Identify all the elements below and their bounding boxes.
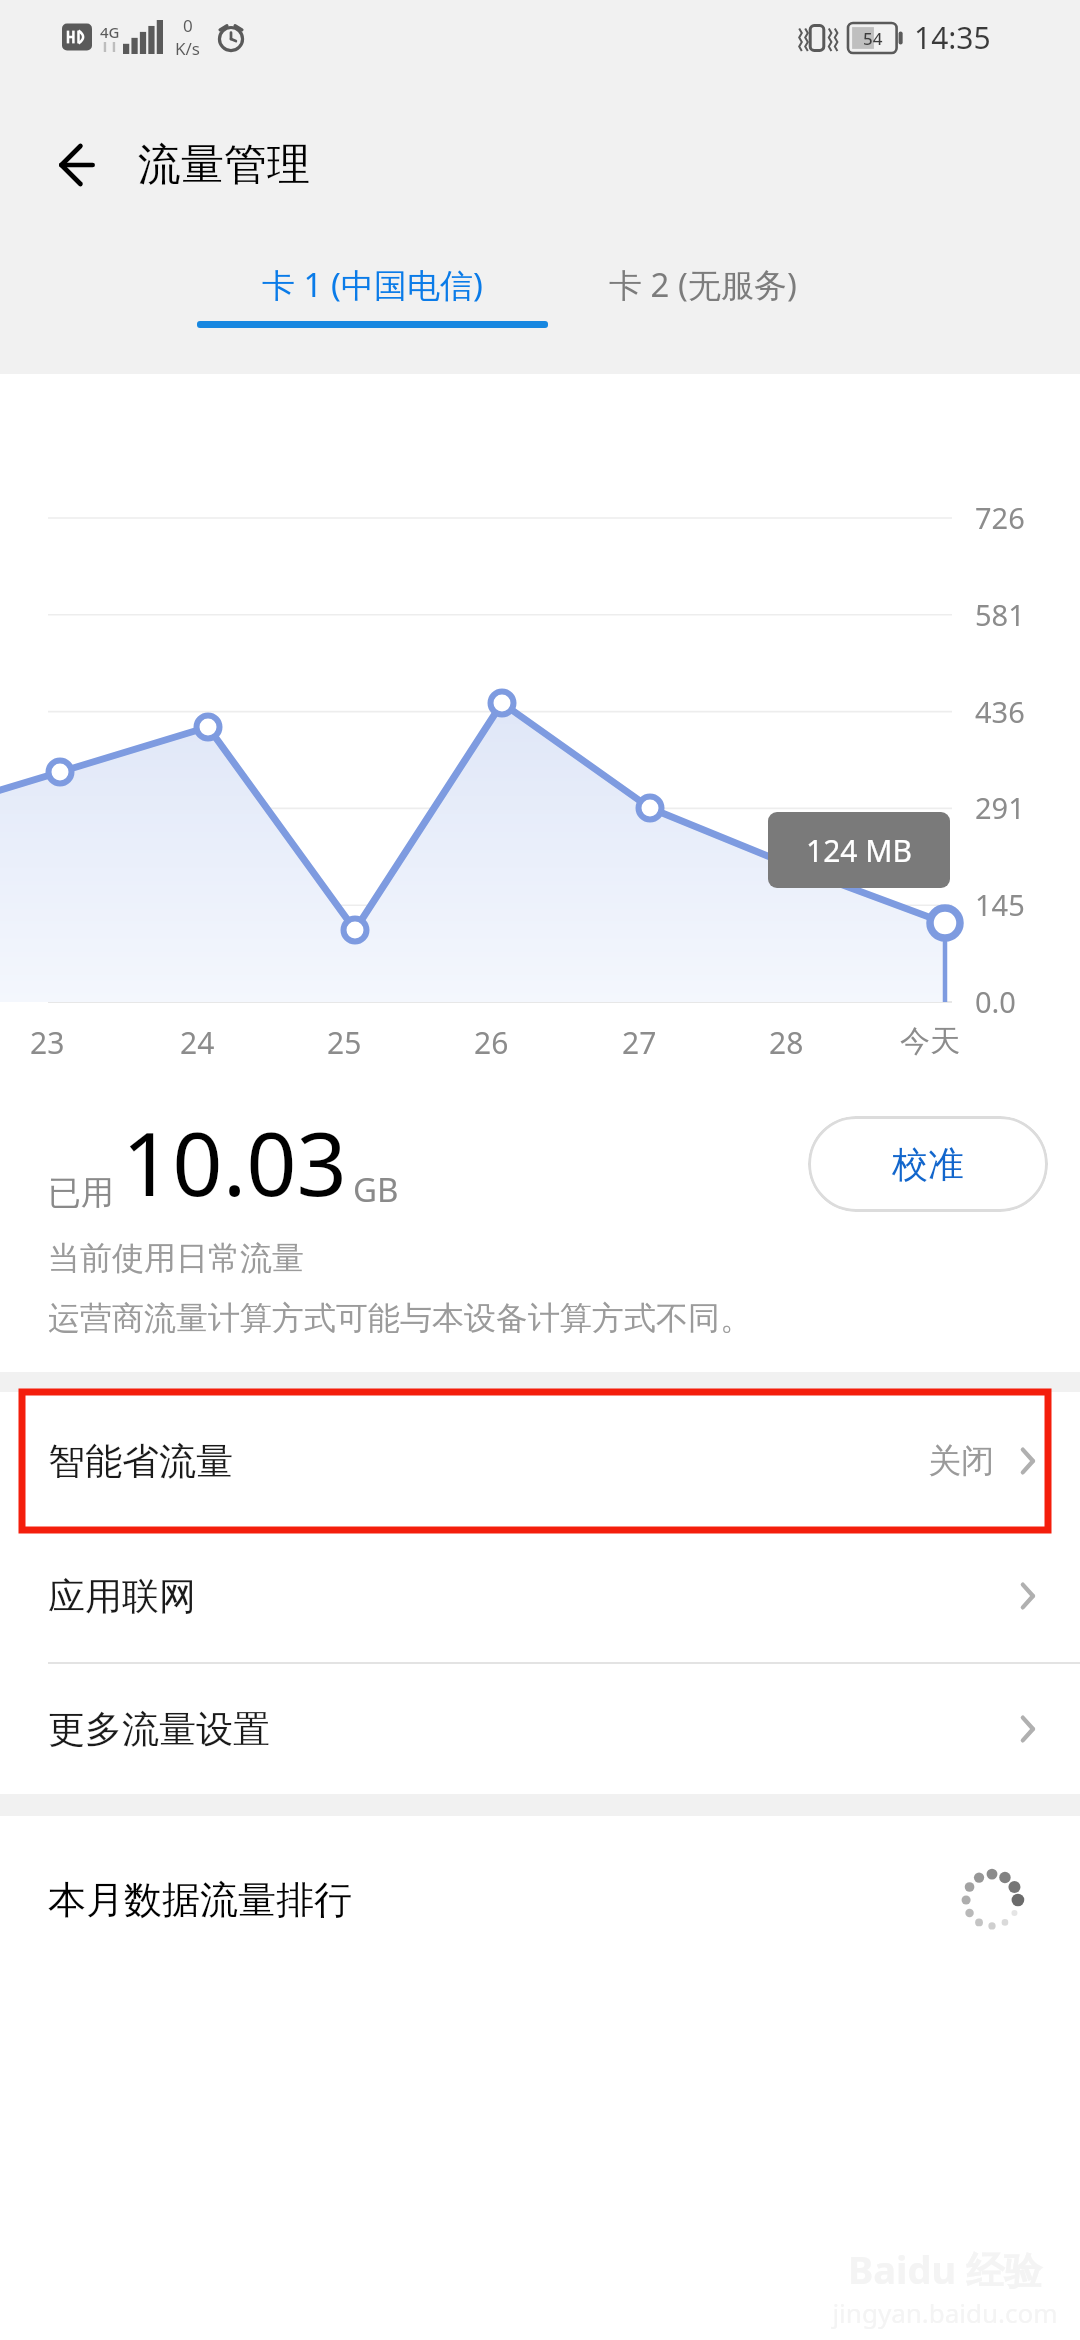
staticText: K/s <box>175 37 200 60</box>
staticText: 智能省流量 <box>48 1438 233 1485</box>
staticText: 28 <box>769 1022 804 1063</box>
other: 加载中 <box>956 1864 1028 1936</box>
staticText: 436 <box>975 692 1025 731</box>
button[interactable]: 卡 2 (无服务) <box>597 262 809 307</box>
staticText: 流量管理 <box>138 138 310 192</box>
button[interactable]: 校准 <box>808 1116 1048 1212</box>
staticText: 10.03 <box>122 1102 347 1222</box>
staticText: 运营商流量计算方式可能与本设备计算方式不同。 <box>48 1298 752 1338</box>
button[interactable]: 返回 <box>38 127 114 203</box>
staticText: 关闭 <box>928 1440 994 1482</box>
staticText: 25 <box>327 1022 362 1063</box>
staticText: 145 <box>975 885 1025 924</box>
button[interactable]: 应用联网 <box>0 1530 1080 1662</box>
staticText: 卡 1 (中国电信) <box>262 262 483 307</box>
staticText: 0 <box>183 14 193 37</box>
staticText: 24 <box>180 1022 215 1063</box>
staticText: 4G <box>100 22 120 42</box>
staticText: 581 <box>975 595 1025 634</box>
staticText: 卡 2 (无服务) <box>609 262 797 307</box>
staticText: 726 <box>975 498 1025 537</box>
staticText: 27 <box>622 1022 657 1063</box>
staticText: 0.0 <box>975 982 1016 1021</box>
staticText: 26 <box>474 1022 509 1063</box>
staticText: 54 <box>863 27 883 50</box>
button[interactable]: 智能省流量 <box>0 1392 1080 1530</box>
button[interactable]: 本月数据流量排行 <box>0 1816 1080 1984</box>
button[interactable]: 卡 1 (中国电信) <box>185 262 560 328</box>
staticText: 今天 <box>900 1022 960 1060</box>
button[interactable]: 更多流量设置 <box>0 1664 1080 1794</box>
staticText: 本月数据流量排行 <box>48 1876 352 1924</box>
staticText: 124 MB <box>806 830 912 871</box>
staticText: 校准 <box>892 1142 964 1187</box>
staticText: 23 <box>30 1022 65 1063</box>
staticText: 已用 <box>48 1172 114 1214</box>
staticText: jingyan.baidu.com <box>832 2295 1058 2330</box>
staticText: 当前使用日常流量 <box>48 1238 304 1278</box>
staticText: 14:35 <box>914 17 991 58</box>
staticText: 291 <box>975 788 1025 827</box>
staticText: GB <box>353 1167 399 1212</box>
staticText: Baidu 经验 <box>848 2243 1042 2295</box>
staticText: 应用联网 <box>48 1573 196 1620</box>
staticText: 更多流量设置 <box>48 1706 270 1753</box>
